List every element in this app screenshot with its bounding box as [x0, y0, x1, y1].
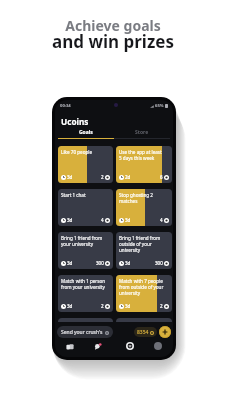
staticText: 3d — [125, 303, 131, 309]
button[interactable]: Add — [159, 326, 171, 338]
button[interactable]: Profile — [147, 339, 169, 353]
staticText: 3d — [125, 217, 131, 223]
staticText: 3d — [67, 217, 73, 223]
button[interactable]: Stop ghosting 2 matches — [116, 189, 172, 226]
staticText: 3d — [67, 174, 73, 180]
button[interactable]: Store — [114, 129, 170, 139]
staticText: Stop ghosting 2 matches — [119, 192, 153, 204]
staticText: Bring 1 friend from your university — [61, 235, 103, 247]
button[interactable]: Bring 1 friend from outside of your univ… — [116, 232, 172, 269]
button[interactable]: 8354 — [134, 327, 157, 337]
staticText: Match with 1 person from your university — [61, 278, 106, 290]
staticText: and win prizes — [52, 30, 174, 53]
button[interactable] — [116, 318, 172, 322]
staticText: Use the app at least 5 days this week — [119, 149, 162, 161]
button[interactable]: Cards — [59, 339, 81, 353]
staticText: 300 — [155, 260, 163, 266]
staticText: 2 — [101, 174, 104, 180]
staticText: 3d — [125, 260, 131, 266]
staticText: 2 — [101, 303, 104, 309]
staticText: 2d — [125, 174, 131, 180]
button[interactable]: Use the app at least 5 days this week — [116, 146, 172, 183]
staticText: 300 — [96, 260, 104, 266]
staticText: 3d — [67, 303, 73, 309]
staticText: 65% — [155, 103, 164, 109]
button[interactable]: Chats — [87, 339, 109, 353]
button[interactable]: Send your crush's — [57, 326, 113, 338]
staticText: 6 — [160, 174, 163, 180]
staticText: Start 1 chat — [61, 192, 86, 198]
button[interactable]: Start 1 chat — [58, 189, 113, 226]
button[interactable]: Goals — [58, 129, 114, 139]
staticText: 00:34 — [60, 103, 71, 109]
staticText: Like 70 people — [61, 149, 93, 155]
staticText: 4 — [160, 217, 163, 223]
staticText: Goals — [79, 129, 93, 136]
button[interactable] — [58, 318, 113, 322]
button[interactable]: Match with 7 people from outside of your… — [116, 275, 172, 312]
button[interactable]: Coins — [119, 339, 141, 353]
staticText: 2 — [160, 303, 163, 309]
staticText: 3d — [67, 260, 73, 266]
staticText: Ucoins — [61, 116, 89, 127]
staticText: Bring 1 friend from outside of your univ… — [119, 235, 161, 253]
staticText: Achieve goals — [65, 16, 161, 35]
staticText: 4 — [101, 217, 104, 223]
button[interactable]: Match with 1 person from your university — [58, 275, 113, 312]
staticText: Match with 7 people from outside of your… — [119, 278, 164, 296]
button[interactable]: Bring 1 friend from your university — [58, 232, 113, 269]
staticText: Send your crush's — [61, 329, 103, 336]
staticText: Store — [135, 129, 149, 136]
staticText: 8354 — [137, 329, 149, 336]
button[interactable]: Like 70 people — [58, 146, 113, 183]
